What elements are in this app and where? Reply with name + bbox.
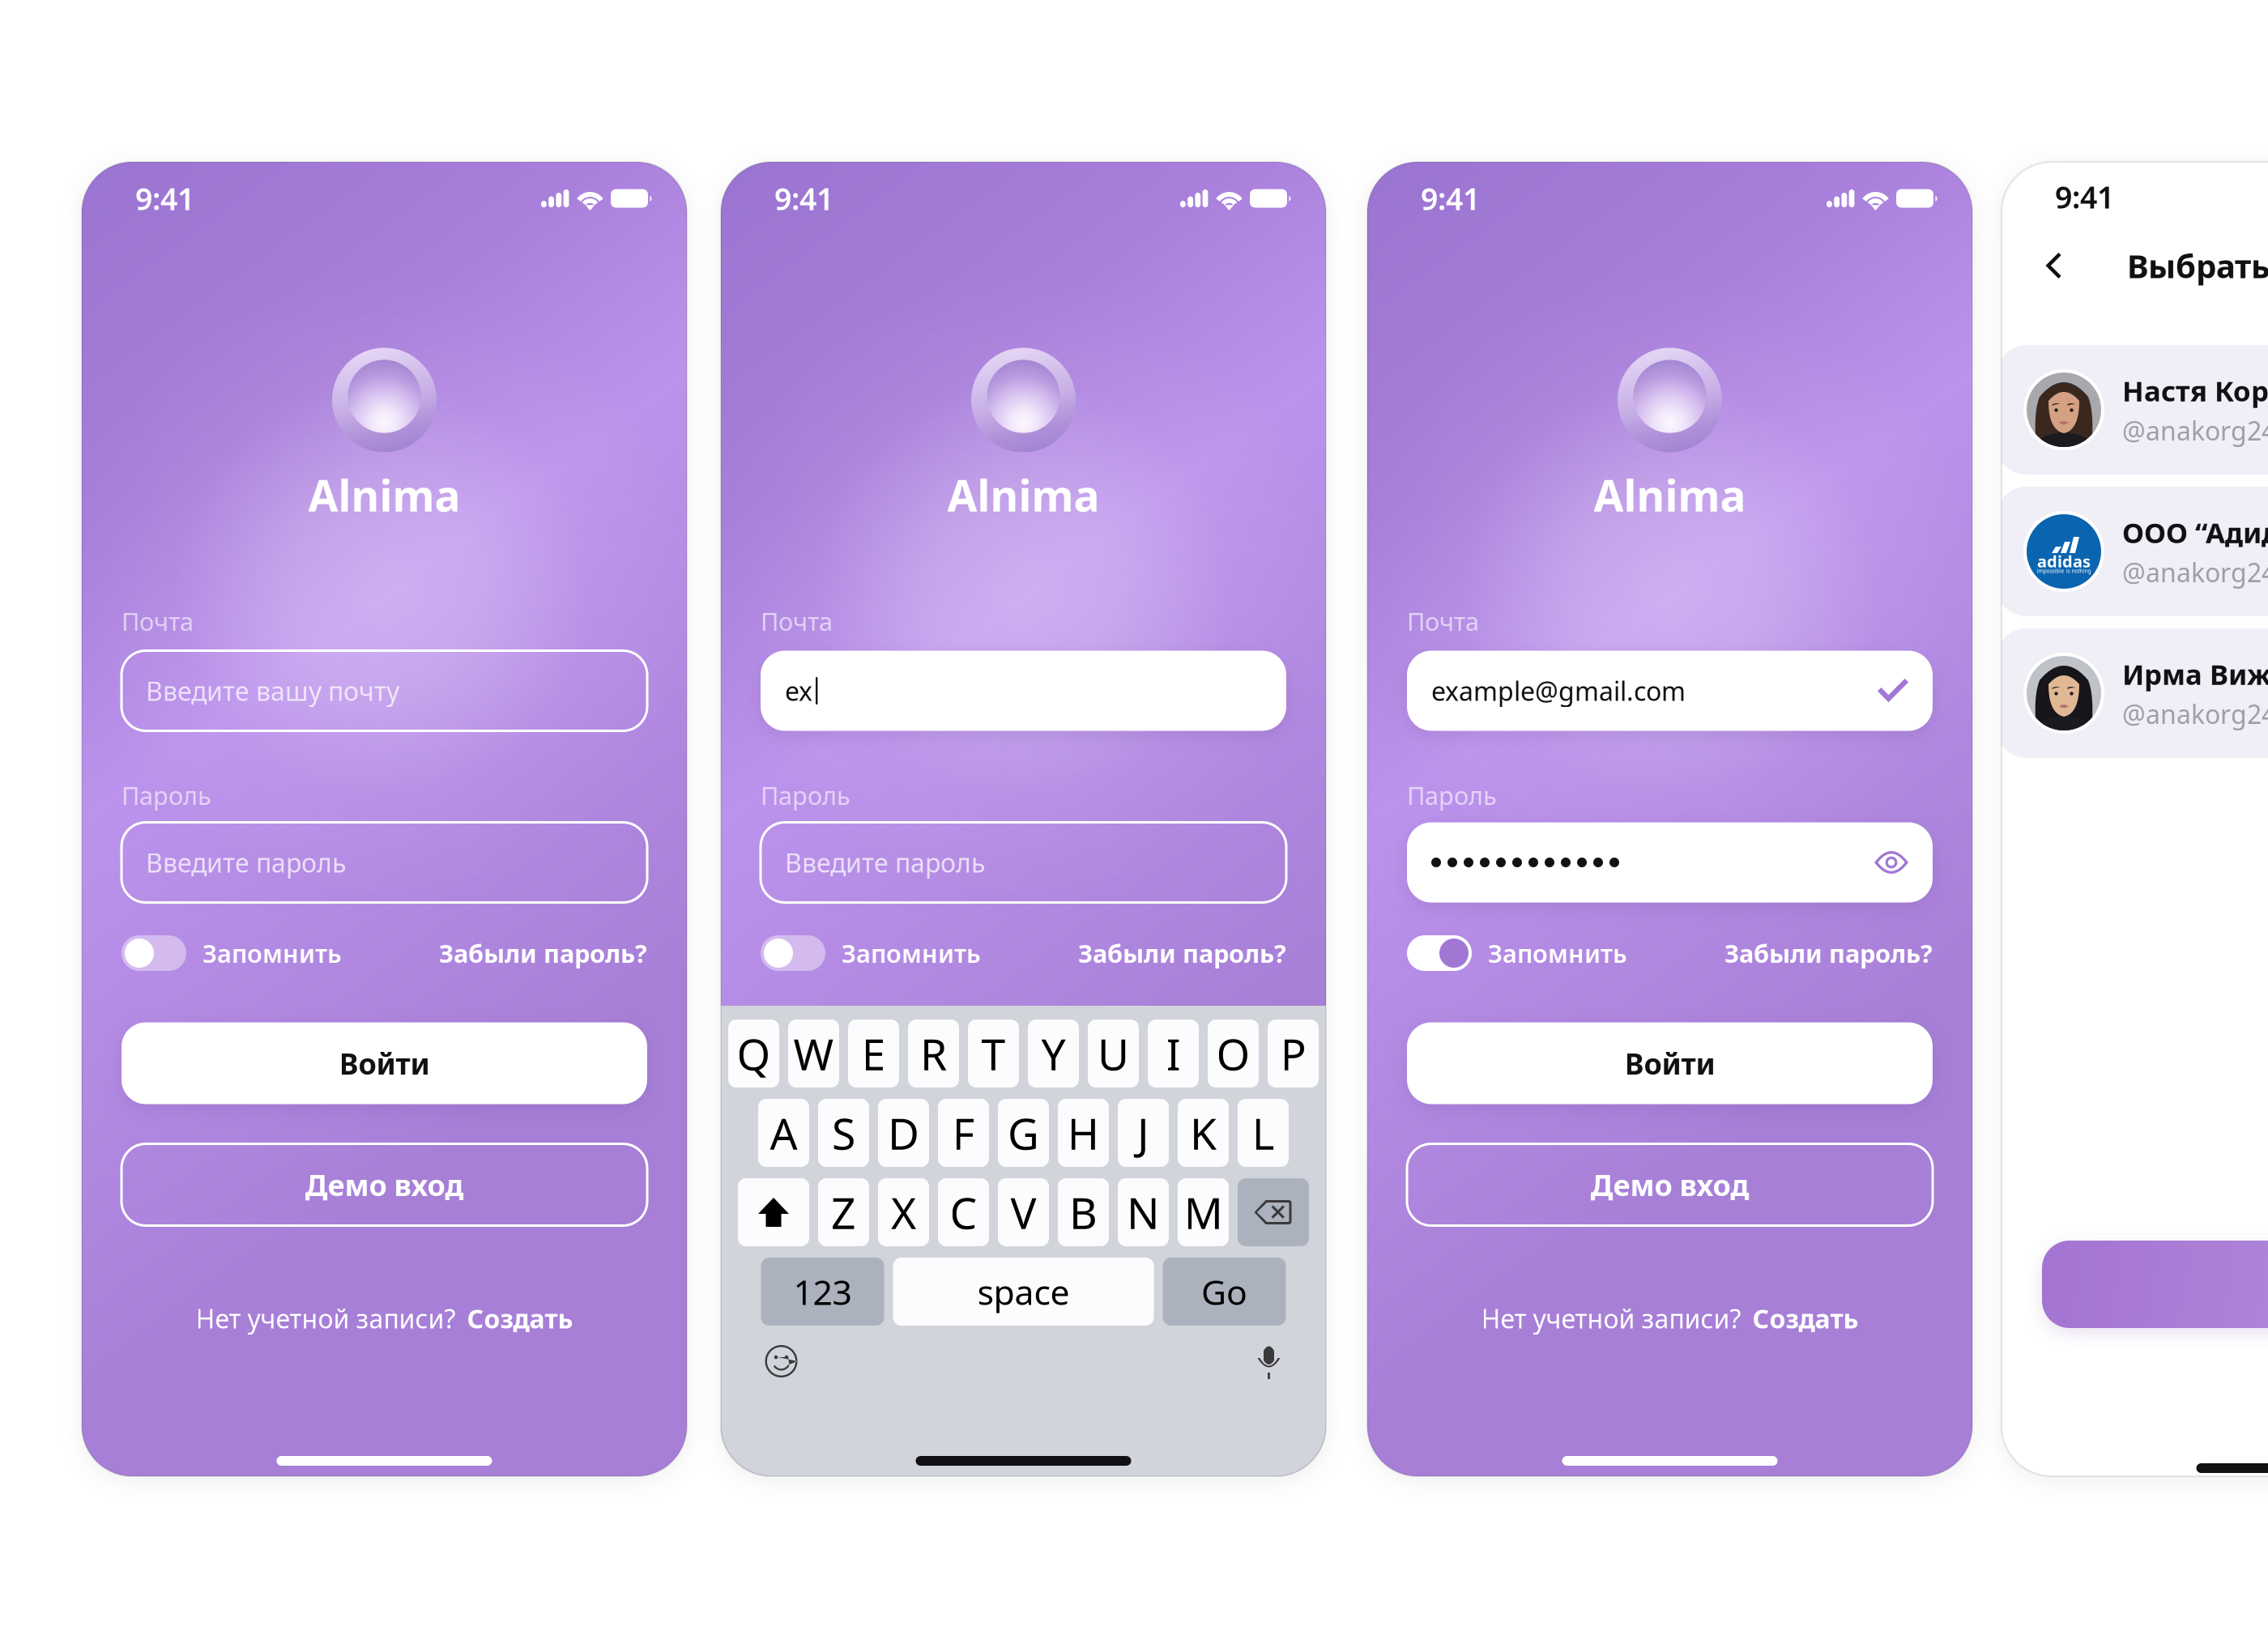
staticText: Q — [737, 1025, 771, 1082]
staticText: X — [891, 1184, 916, 1241]
staticText: Пароль — [1407, 779, 1497, 812]
button[interactable]: W — [788, 1020, 839, 1088]
button[interactable]: Назад — [2034, 246, 2073, 285]
staticText: Z — [831, 1184, 856, 1241]
staticText: adidas — [2037, 550, 2091, 572]
button[interactable]: Запомнить — [825, 937, 981, 970]
button[interactable]: Shift — [738, 1178, 809, 1246]
button[interactable]: P — [1268, 1020, 1319, 1088]
button[interactable]: Войти — [122, 1022, 647, 1104]
staticText: F — [952, 1104, 975, 1162]
staticText: 9:41 — [774, 178, 833, 218]
staticText: L — [1252, 1104, 1275, 1162]
staticText: V — [1010, 1184, 1036, 1241]
staticText: A — [770, 1104, 797, 1162]
button[interactable]: Emoji — [764, 1344, 798, 1378]
staticText: S — [832, 1104, 855, 1162]
button[interactable]: Продолжить — [2042, 1241, 2268, 1328]
button[interactable]: Нет учетной записи? — [196, 1301, 573, 1336]
button[interactable]: V — [998, 1178, 1049, 1246]
button[interactable]: Забыли пароль? — [1078, 937, 1286, 970]
button[interactable]: Запомнить — [186, 937, 342, 970]
staticText: Alnima — [308, 466, 460, 523]
staticText: Alnima — [1594, 466, 1746, 523]
button[interactable]: Go — [1163, 1258, 1286, 1326]
button[interactable]: I — [1148, 1020, 1199, 1088]
staticText: Alnima — [947, 466, 1100, 523]
staticText: 9:41 — [135, 178, 194, 218]
button[interactable]: R — [908, 1020, 959, 1088]
staticText: Введите вашу почту — [146, 674, 399, 708]
button[interactable]: Войти — [1407, 1022, 1933, 1104]
button[interactable]: Запомнить — [1472, 937, 1627, 970]
button[interactable]: Dictate — [1255, 1343, 1283, 1379]
button[interactable]: C — [938, 1178, 989, 1246]
staticText: 123 — [793, 1269, 852, 1315]
staticText: Создать — [467, 1301, 573, 1336]
staticText: J — [1137, 1104, 1149, 1162]
button[interactable]: Введите вашу почту — [122, 651, 647, 731]
button[interactable]: Y — [1028, 1020, 1079, 1088]
button[interactable]: J — [1118, 1099, 1169, 1167]
button[interactable]: Запомнить — [761, 935, 825, 971]
button[interactable]: Запомнить — [1407, 935, 1472, 971]
staticText: C — [950, 1184, 977, 1241]
staticText: Пароль — [761, 779, 850, 812]
button[interactable]: Запомнить — [122, 935, 186, 971]
button[interactable]: E — [848, 1020, 899, 1088]
button[interactable]: K — [1178, 1099, 1229, 1167]
staticText: Почта — [122, 605, 194, 638]
button[interactable]: U — [1088, 1020, 1139, 1088]
button[interactable]: X — [878, 1178, 929, 1246]
button[interactable]: Delete — [1238, 1178, 1309, 1246]
staticText: ex — [785, 674, 812, 708]
staticText: N — [1127, 1184, 1160, 1241]
button[interactable]: L — [1238, 1099, 1289, 1167]
button[interactable]: Демо вход — [122, 1144, 647, 1226]
staticText: U — [1098, 1025, 1129, 1082]
button[interactable]: Забыли пароль? — [1724, 937, 1933, 970]
staticText: example@gmail.com — [1431, 674, 1686, 708]
staticText: Запомнить — [202, 937, 342, 970]
button[interactable]: F — [938, 1099, 989, 1167]
button[interactable]: S — [818, 1099, 869, 1167]
button[interactable]: 123 — [761, 1258, 884, 1326]
button[interactable]: Z — [818, 1178, 869, 1246]
button[interactable]: Демо вход — [1407, 1144, 1933, 1226]
button[interactable]: B — [1058, 1178, 1109, 1246]
staticText: Почта — [1407, 605, 1479, 638]
button[interactable]: Настя Коржан — [1996, 345, 2268, 475]
button[interactable]: D — [878, 1099, 929, 1167]
button[interactable]: Нет учетной записи? — [1481, 1301, 1859, 1336]
button[interactable]: O — [1208, 1020, 1259, 1088]
button[interactable]: example@gmail.com — [1407, 651, 1933, 731]
button[interactable]: G — [998, 1099, 1049, 1167]
staticText: Создать — [1752, 1301, 1859, 1336]
button[interactable]: Q — [728, 1020, 779, 1088]
button[interactable]: N — [1118, 1178, 1169, 1246]
button[interactable]: space — [893, 1258, 1154, 1326]
staticText: Введите пароль — [146, 845, 346, 880]
staticText: @anakorg24 — [2122, 697, 2268, 731]
button[interactable]: Ирма Вижн — [1996, 628, 2268, 758]
button[interactable]: adidas — [1996, 487, 2268, 616]
staticText: ООО “Адидас” — [2122, 514, 2268, 551]
staticText: Забыли пароль? — [439, 937, 647, 970]
staticText: Демо вход — [1590, 1165, 1749, 1204]
button[interactable]: Введите пароль — [122, 822, 647, 903]
button[interactable]: Забыли пароль? — [439, 937, 647, 970]
staticText: D — [888, 1104, 919, 1162]
staticText: space — [977, 1269, 1070, 1315]
button[interactable]: A — [758, 1099, 809, 1167]
button[interactable]: H — [1058, 1099, 1109, 1167]
button[interactable]: M — [1178, 1178, 1229, 1246]
staticText: @anakorg24 — [2122, 413, 2268, 448]
button[interactable] — [1407, 822, 1933, 903]
button[interactable]: Введите пароль — [761, 822, 1286, 903]
staticText: W — [793, 1025, 834, 1082]
button[interactable]: ex — [761, 651, 1286, 731]
staticText: Нет учетной записи? — [1481, 1301, 1741, 1336]
button[interactable]: T — [968, 1020, 1019, 1088]
staticText: Выбрать аккаунт — [2127, 244, 2268, 287]
staticText: K — [1190, 1104, 1217, 1162]
